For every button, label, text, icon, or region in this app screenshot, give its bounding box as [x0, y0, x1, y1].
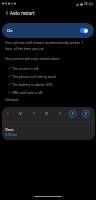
button[interactable]: Back [3, 9, 11, 17]
staticText: W [45, 111, 49, 116]
staticText: Schedule [5, 98, 19, 102]
staticText: M [19, 111, 23, 116]
staticText: T [59, 111, 61, 116]
button[interactable]: W [42, 109, 51, 118]
staticText: S [85, 111, 87, 116]
staticText: 74 [84, 2, 88, 6]
staticText: The screen is off. [12, 66, 40, 71]
button[interactable]: On [2, 23, 94, 38]
staticText: S [7, 111, 9, 116]
staticText: The phone isn't being used. [12, 74, 57, 79]
button[interactable]: Time [2, 127, 95, 136]
button[interactable]: T [55, 109, 64, 118]
button[interactable]: S [3, 109, 12, 118]
staticText: Your phone will only restart when: [5, 56, 61, 61]
staticText: Time [5, 127, 14, 132]
button[interactable]: F [68, 109, 77, 118]
staticText: F [72, 111, 74, 116]
staticText: SIM card lock is off. [12, 90, 44, 95]
staticText: The battery is above 30%. [12, 82, 54, 87]
button[interactable]: S [81, 109, 90, 118]
staticText: On [7, 28, 13, 33]
button[interactable]: T [29, 109, 38, 118]
staticText: 3:00 am [5, 132, 18, 136]
staticText: Your phone will restart automatically wi… [5, 40, 84, 45]
staticText: hour of the time you set. [5, 46, 45, 51]
staticText: T [33, 111, 35, 116]
button[interactable]: M [16, 109, 25, 118]
staticText: Auto restart [10, 10, 35, 16]
